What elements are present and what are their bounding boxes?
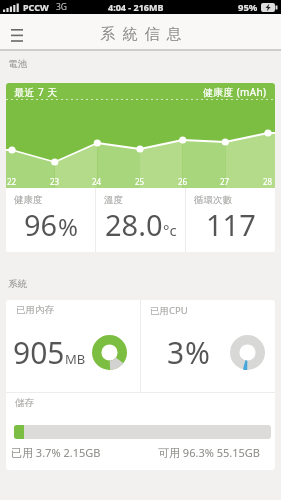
staticText: 儲存	[15, 397, 34, 409]
staticText: PCCW	[23, 1, 49, 13]
staticText: 25	[135, 176, 145, 187]
staticText: 循環次數	[194, 194, 232, 206]
staticText: 溫度	[104, 194, 123, 206]
staticText: 28	[263, 176, 273, 187]
staticText: 已用CPU	[150, 304, 188, 317]
staticText: 22	[7, 176, 17, 187]
staticText: 系統信息	[97, 25, 185, 44]
button[interactable]: 已用內存	[6, 300, 140, 392]
staticText: 健康度	[14, 194, 43, 206]
button[interactable]: 溫度	[96, 188, 185, 252]
staticText: 3G	[56, 1, 68, 13]
staticText: 26	[178, 176, 188, 187]
staticText: %	[58, 210, 78, 243]
staticText: 117	[206, 205, 256, 244]
staticText: 可用 96.3% 55.15GB	[158, 445, 260, 460]
staticText: 最近 7 天	[14, 85, 58, 99]
staticText: 3	[167, 332, 185, 373]
staticText: 已用 3.7% 2.15GB	[11, 445, 101, 460]
staticText: 27	[220, 176, 230, 187]
staticText: 系統	[8, 278, 27, 290]
staticText: 23	[50, 176, 60, 187]
staticText: 健康度 (mAh)	[203, 85, 267, 99]
button[interactable]: 已用CPU	[141, 300, 275, 392]
button[interactable]: 循環次數	[186, 188, 275, 252]
button[interactable]: 儲存	[6, 393, 275, 470]
button[interactable]	[5, 21, 29, 45]
staticText: %	[185, 332, 210, 373]
staticText: 4:04 - 216MB	[108, 1, 164, 13]
staticText: 28.0	[105, 205, 163, 244]
button[interactable]: 健康度	[6, 188, 95, 252]
staticText: MB	[65, 350, 86, 368]
staticText: 24	[92, 176, 102, 187]
staticText: 95%	[238, 1, 258, 14]
button[interactable]: 最近 7 天	[6, 83, 275, 252]
staticText: 96	[24, 205, 58, 244]
staticText: 電池	[8, 58, 27, 70]
staticText: 已用內存	[16, 304, 54, 316]
staticText: °c	[163, 220, 177, 240]
staticText: 905	[13, 332, 65, 373]
